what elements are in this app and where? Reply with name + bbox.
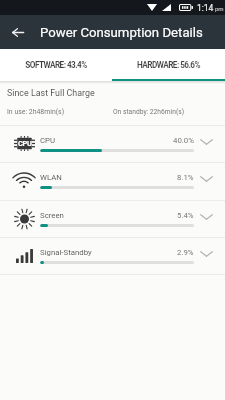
button[interactable]: Screen	[0, 201, 225, 237]
staticText: CPU	[40, 136, 56, 145]
button[interactable]: CPU	[0, 126, 225, 162]
button[interactable]: HARDWARE: 56.6%	[112, 49, 225, 81]
staticText: HARDWARE: 56.6%	[137, 60, 200, 70]
staticText: Signal-Standby	[40, 248, 92, 257]
staticText: 40.0%	[173, 136, 194, 145]
button[interactable]: SOFTWARE: 43.4%	[0, 49, 112, 81]
staticText: Screen	[40, 211, 64, 220]
staticText: 8.1%	[177, 173, 194, 182]
staticText: 1:14	[197, 3, 214, 13]
staticText: pm	[215, 5, 224, 12]
button[interactable]: Expand details	[195, 129, 217, 155]
button[interactable]: WLAN	[0, 163, 225, 199]
staticText: Since Last Full Charge	[7, 88, 95, 98]
staticText: Power Consumption Details	[40, 25, 203, 40]
staticText: On standby: 22h6min(s)	[113, 108, 185, 116]
staticText: CPU	[18, 139, 32, 148]
staticText: WLAN	[40, 173, 62, 182]
staticText: In use: 2h48min(s)	[7, 108, 65, 116]
staticText: 2.9%	[177, 248, 194, 257]
button[interactable]: Back	[5, 15, 31, 49]
button[interactable]: Expand details	[195, 204, 217, 230]
button[interactable]: Signal-Standby	[0, 238, 225, 274]
button[interactable]: Expand details	[195, 166, 217, 192]
button[interactable]: Expand details	[195, 241, 217, 267]
staticText: SOFTWARE: 43.4%	[25, 60, 87, 70]
staticText: 5.4%	[177, 211, 194, 220]
